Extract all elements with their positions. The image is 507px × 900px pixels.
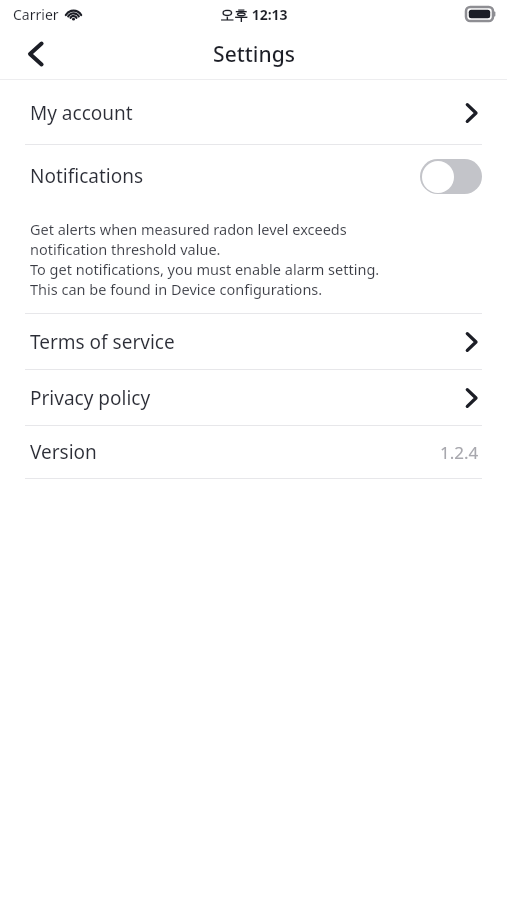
staticText: To get notifications, you must enable al… bbox=[30, 259, 380, 279]
staticText: Privacy policy bbox=[30, 385, 151, 411]
button[interactable]: Privacy policy bbox=[0, 370, 507, 425]
staticText: 1.2.4 bbox=[440, 441, 479, 464]
staticText: My account bbox=[30, 100, 133, 126]
staticText: notification threshold value. bbox=[30, 239, 221, 259]
staticText: This can be found in Device configuratio… bbox=[30, 279, 323, 299]
staticText: Version bbox=[30, 439, 97, 465]
staticText: Settings bbox=[213, 40, 295, 69]
staticText: Notifications bbox=[30, 163, 144, 189]
button[interactable]: Terms of service bbox=[0, 314, 507, 369]
button[interactable]: Back bbox=[14, 32, 58, 76]
button[interactable]: My account bbox=[0, 82, 507, 144]
button[interactable]: Notifications toggle, off bbox=[420, 159, 482, 194]
staticText: 오후 12:13 bbox=[220, 5, 288, 24]
button[interactable]: Notifications bbox=[0, 145, 507, 207]
staticText: Carrier bbox=[13, 5, 59, 24]
staticText: Terms of service bbox=[30, 329, 175, 355]
staticText: Get alerts when measured radon level exc… bbox=[30, 219, 347, 239]
